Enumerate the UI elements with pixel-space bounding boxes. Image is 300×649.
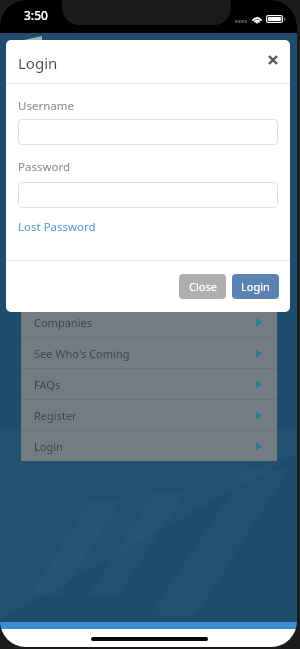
- button[interactable]: Companies: [21, 307, 277, 337]
- button[interactable]: Close dialog: [262, 49, 284, 71]
- staticText: Password: [18, 159, 71, 175]
- staticText: Username: [18, 98, 74, 114]
- button[interactable]: Login: [21, 431, 277, 461]
- button[interactable]: [18, 119, 278, 145]
- staticText: FAQs: [34, 377, 61, 392]
- button[interactable]: Exhibitors: [21, 275, 277, 306]
- button[interactable]: FAQs: [21, 369, 277, 399]
- staticText: 3:50: [24, 7, 48, 23]
- staticText: Login: [241, 279, 270, 294]
- staticText: Login: [34, 439, 63, 454]
- staticText: Login: [18, 53, 58, 73]
- button[interactable]: Lost Password: [18, 219, 96, 235]
- staticText: See Who's Coming: [34, 346, 130, 361]
- button[interactable]: [18, 182, 278, 208]
- staticText: Register: [34, 408, 77, 423]
- button[interactable]: Register: [21, 400, 277, 430]
- button[interactable]: Login: [232, 274, 279, 299]
- staticText: Close: [189, 279, 217, 294]
- staticText: Companies: [34, 315, 92, 330]
- button[interactable]: See Who's Coming: [21, 338, 277, 368]
- button[interactable]: Close: [179, 274, 226, 299]
